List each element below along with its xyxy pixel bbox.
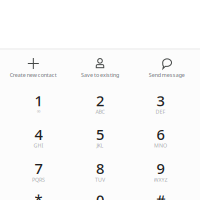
staticText: 2 [96,91,104,110]
button[interactable]: Create new contact [0,55,67,82]
button[interactable]: 6 [138,126,182,156]
staticText: # [156,190,165,200]
staticText: 6 [156,124,164,144]
button[interactable]: # [138,191,182,200]
button[interactable]: 3 [138,92,182,122]
button[interactable]: 0 [78,191,122,200]
staticText: JKL [96,142,103,149]
staticText: DEF [155,108,165,115]
staticText: * [34,190,42,200]
staticText: 0 [96,190,104,200]
staticText: ∞ [36,108,40,114]
staticText: 9 [156,159,164,178]
staticText: 5 [96,124,104,144]
staticText: MNO [154,142,167,149]
button[interactable]: 2 [78,92,122,122]
button[interactable]: 5 [78,126,122,156]
staticText: Create new contact [10,71,57,79]
staticText: PQRS [32,176,45,183]
staticText: ABC [95,108,104,115]
button[interactable]: 1 [16,92,60,122]
button[interactable]: Save to existing [67,55,133,82]
button[interactable]: * [16,191,60,200]
staticText: WXYZ [153,176,167,183]
staticText: Save to existing [81,71,119,79]
staticText: GHI [33,142,43,149]
button[interactable]: 9 [138,160,182,190]
staticText: 4 [34,124,42,144]
button[interactable]: 4 [16,126,60,156]
staticText: Send message [149,71,185,79]
button[interactable]: 8 [78,160,122,190]
staticText: 3 [156,91,164,110]
staticText: 8 [96,159,104,178]
staticText: TUV [95,176,105,183]
button[interactable]: 7 [16,160,60,190]
staticText: 1 [34,91,42,110]
staticText: 7 [34,159,42,178]
button[interactable]: Send message [133,55,200,82]
